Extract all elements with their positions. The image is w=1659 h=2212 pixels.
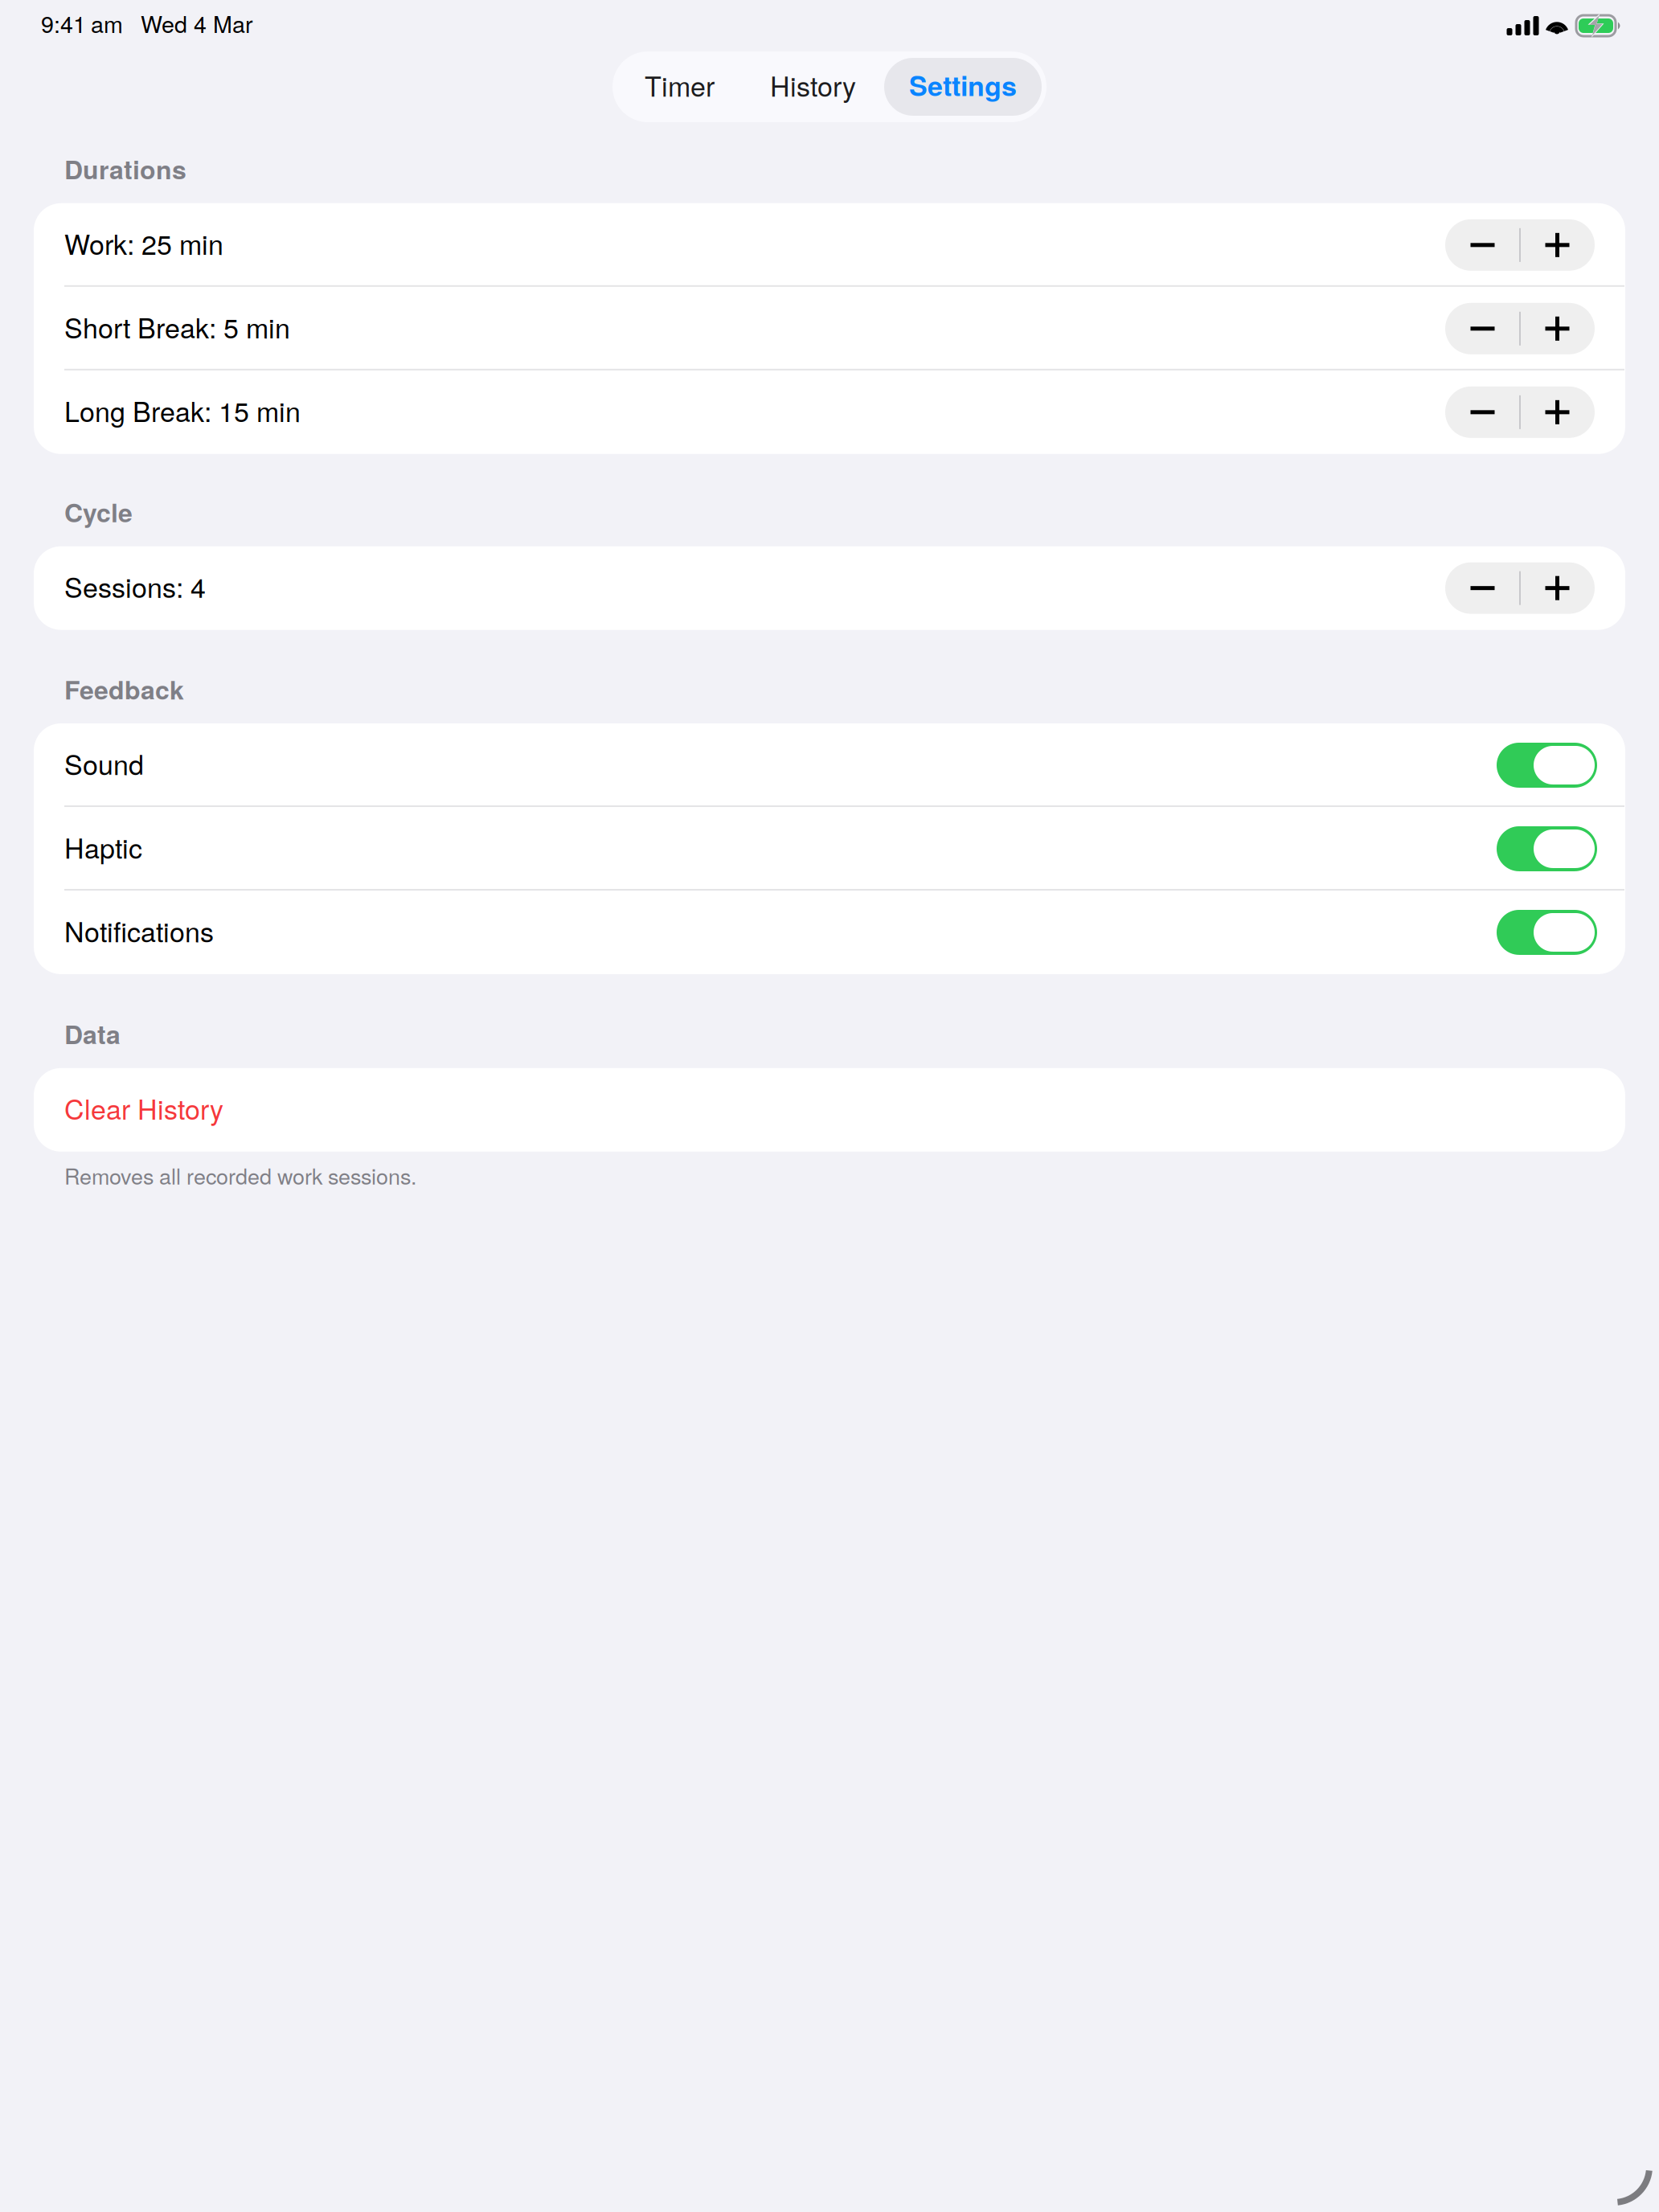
staticText: Wed 4 Mar [141,6,253,39]
staticText: Sessions: 4 [64,567,206,606]
staticText: Feedback [64,670,184,707]
staticText: Notifications [64,911,214,950]
button[interactable]: Decrease [1445,386,1520,438]
staticText: 9:41 am [41,6,123,39]
staticText: Clear History [64,1088,223,1127]
button[interactable]: Sound [34,723,1625,807]
button[interactable]: Notifications [34,891,1625,974]
staticText: Haptic [64,827,142,866]
button[interactable]: Increase [1520,562,1595,614]
button[interactable]: Clear History [34,1068,1625,1152]
button[interactable]: History [742,58,884,116]
staticText: Sound [64,744,144,783]
button[interactable]: Increase [1520,303,1595,354]
staticText: Durations [64,150,186,187]
staticText: Long Break: 15 min [64,391,301,430]
button[interactable]: Decrease [1445,303,1520,354]
staticText: Cycle [64,493,133,530]
button[interactable]: Settings [884,58,1042,116]
staticText: Work: 25 min [64,223,223,263]
button[interactable]: Decrease [1445,219,1520,271]
button[interactable]: Decrease [1445,562,1520,614]
button[interactable]: Increase [1520,219,1595,271]
staticText: Timer [645,65,715,104]
staticText: Data [64,1015,121,1052]
staticText: Settings [909,65,1017,104]
button[interactable]: Increase [1520,386,1595,438]
staticText: Removes all recorded work sessions. [64,1160,416,1191]
button[interactable]: Timer [617,58,742,116]
staticText: History [770,65,856,104]
staticText: Short Break: 5 min [64,307,290,346]
button[interactable]: Haptic [34,807,1625,891]
